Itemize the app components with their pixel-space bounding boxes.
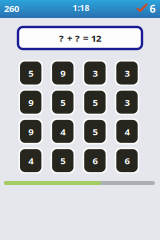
button[interactable]: 9	[20, 91, 41, 114]
staticText: 4	[124, 125, 129, 138]
button[interactable]: 4	[52, 120, 73, 143]
button[interactable]: 4	[116, 120, 138, 143]
staticText: 5	[92, 96, 97, 109]
staticText: 1:18	[72, 2, 89, 14]
staticText: 5	[92, 125, 97, 138]
button[interactable]: 5	[84, 91, 106, 114]
staticText: 5	[60, 154, 65, 167]
button[interactable]: 5	[52, 149, 73, 172]
button[interactable]: 5	[20, 61, 41, 84]
button[interactable]: 6	[116, 149, 138, 172]
staticText: 6	[92, 154, 97, 167]
button[interactable]: 4	[20, 149, 41, 172]
staticText: 9	[60, 66, 65, 80]
staticText: 5	[28, 66, 33, 80]
button[interactable]: 9	[20, 120, 41, 143]
staticText: 4	[28, 154, 33, 167]
staticText: =	[83, 31, 88, 45]
staticText: ?	[59, 31, 64, 45]
staticText: +	[67, 31, 72, 45]
button[interactable]: 3	[116, 91, 138, 114]
staticText: 3	[124, 66, 129, 80]
button[interactable]: 5	[52, 91, 73, 114]
staticText: 6	[124, 154, 129, 167]
staticText: 3	[92, 66, 97, 80]
staticText: ?	[75, 31, 80, 45]
button[interactable]: 6	[84, 149, 106, 172]
staticText: 260	[4, 2, 19, 15]
staticText: 9	[28, 96, 33, 109]
button[interactable]: 9	[52, 61, 73, 84]
button[interactable]: 5	[84, 120, 106, 143]
staticText: 6	[149, 1, 155, 16]
staticText: 5	[60, 96, 65, 109]
staticText: 4	[60, 125, 65, 138]
staticText: 9	[28, 125, 33, 138]
staticText: 3	[124, 96, 129, 109]
staticText: 12	[91, 31, 101, 45]
button[interactable]: 3	[116, 61, 138, 84]
button[interactable]: 3	[84, 61, 106, 84]
